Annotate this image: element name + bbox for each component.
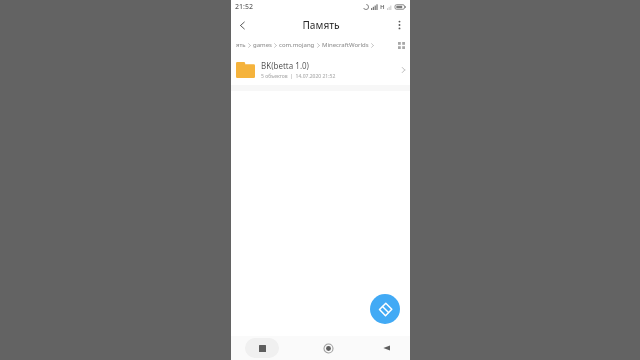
button[interactable]: More options	[388, 14, 410, 36]
button[interactable]: Create	[370, 294, 400, 324]
button[interactable]: Recents	[245, 338, 279, 358]
staticText: BK(betta 1.0)	[261, 60, 310, 71]
staticText: H	[380, 3, 385, 11]
staticText: MinecraftWorlds	[322, 41, 369, 49]
staticText: com.mojang	[279, 41, 315, 49]
button[interactable]: MinecraftWorlds	[322, 41, 369, 49]
button[interactable]: BK(betta 1.0)	[231, 55, 410, 85]
staticText: games	[253, 41, 272, 49]
button[interactable]: Home	[318, 338, 338, 358]
staticText: Память	[302, 18, 340, 32]
staticText: ять	[236, 41, 246, 49]
button[interactable]: Back	[231, 14, 253, 36]
button[interactable]: games	[253, 41, 272, 49]
button[interactable]: Change view	[395, 39, 407, 51]
button[interactable]: com.mojang	[279, 41, 315, 49]
button[interactable]: ять	[236, 41, 246, 49]
button[interactable]: Back	[376, 338, 396, 358]
staticText: 5 объектов | 14.07.2020 21:52	[261, 73, 336, 80]
staticText: 21:52	[235, 2, 253, 12]
